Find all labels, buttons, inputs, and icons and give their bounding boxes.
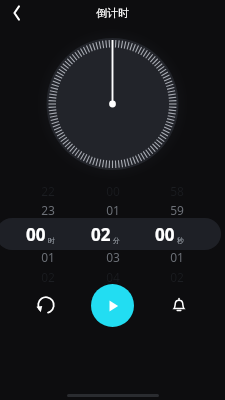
staticText: 58 bbox=[157, 183, 197, 199]
button[interactable]: Back bbox=[4, 0, 30, 26]
staticText: 00 bbox=[26, 223, 46, 246]
button[interactable]: 00 bbox=[0, 218, 225, 250]
staticText: 59 bbox=[157, 202, 197, 218]
button[interactable]: 02 bbox=[0, 218, 225, 250]
staticText: 01 bbox=[157, 249, 197, 265]
button[interactable]: 00 bbox=[0, 218, 225, 250]
staticText: 秒 bbox=[177, 236, 184, 245]
staticText: 01 bbox=[28, 249, 68, 265]
staticText: 分 bbox=[113, 236, 120, 245]
staticText: 23 bbox=[28, 202, 68, 218]
staticText: 02 bbox=[91, 223, 111, 246]
staticText: 01 bbox=[93, 202, 133, 218]
staticText: 倒计时 bbox=[96, 6, 129, 20]
staticText: 04 bbox=[93, 269, 133, 285]
staticText: 时 bbox=[48, 236, 55, 245]
staticText: 02 bbox=[157, 269, 197, 285]
staticText: 02 bbox=[28, 269, 68, 285]
staticText: 22 bbox=[28, 183, 68, 199]
button[interactable]: Reset bbox=[30, 289, 62, 321]
staticText: 03 bbox=[93, 249, 133, 265]
button[interactable]: Alarm sound bbox=[163, 289, 195, 321]
button[interactable]: Start bbox=[91, 284, 134, 327]
staticText: 00 bbox=[155, 223, 175, 246]
